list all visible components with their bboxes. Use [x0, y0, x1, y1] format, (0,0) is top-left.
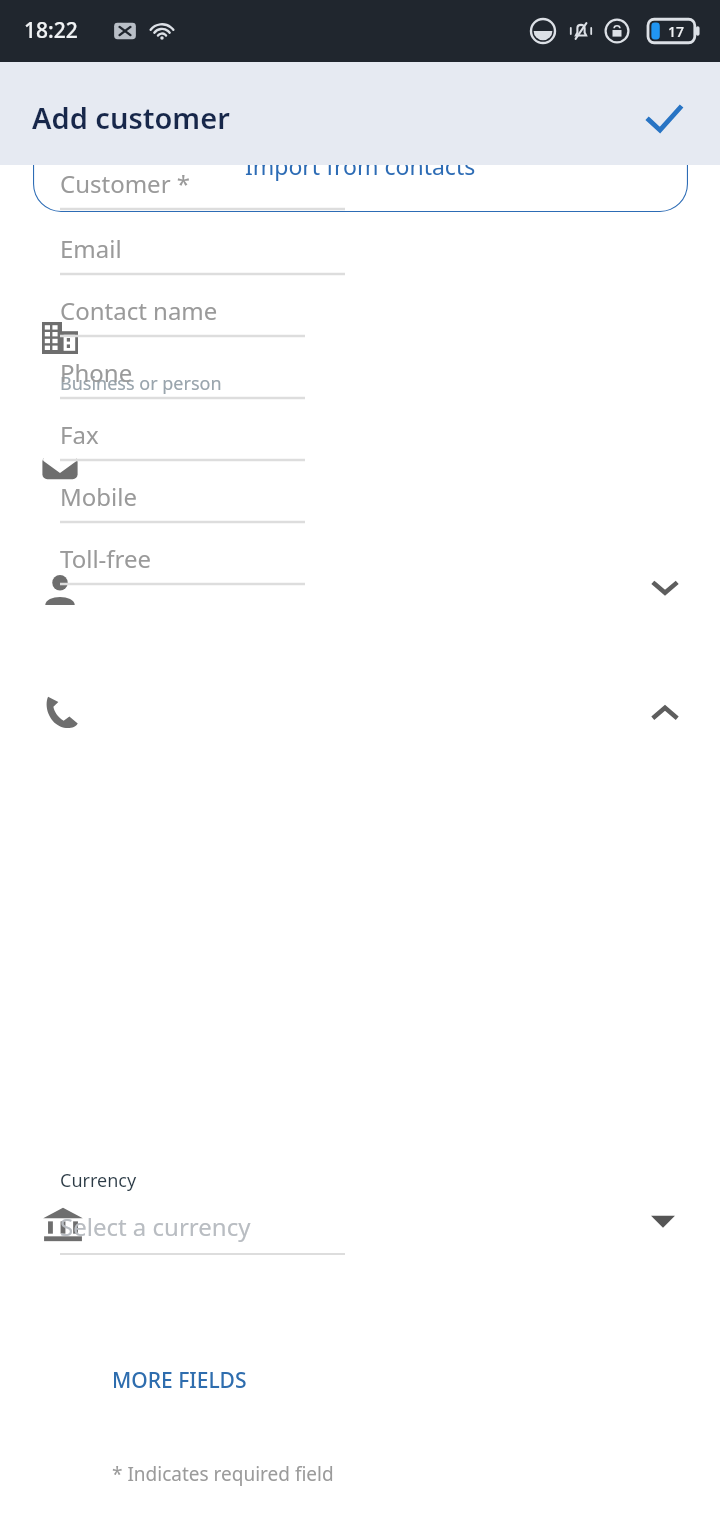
button[interactable]: Email: [60, 221, 345, 275]
staticText: Currency: [60, 1168, 137, 1193]
button[interactable]: Select a currency: [633, 1191, 693, 1251]
button[interactable]: Customer *: [60, 156, 345, 210]
staticText: Import from contacts: [245, 150, 476, 181]
button[interactable]: Import from contacts: [33, 120, 688, 212]
button[interactable]: Select a currency: [60, 1200, 345, 1252]
staticText: 17: [668, 22, 685, 41]
staticText: * Indicates required field: [112, 1461, 334, 1487]
staticText: Customer *: [60, 167, 191, 200]
staticText: Mobile: [60, 480, 137, 513]
button[interactable]: Fax: [60, 407, 305, 461]
staticText: Business or person: [60, 371, 222, 396]
staticText: Email: [60, 232, 122, 265]
button[interactable]: Contact name: [60, 283, 305, 337]
button[interactable]: Mobile: [60, 469, 305, 523]
button[interactable]: MORE FIELDS: [100, 1354, 259, 1406]
staticText: Phone: [60, 356, 133, 389]
staticText: 18:22: [24, 16, 78, 45]
staticText: Add customer: [32, 98, 230, 137]
staticText: Select a currency: [60, 1210, 251, 1243]
button[interactable]: Expand contact fields: [634, 557, 696, 619]
button[interactable]: Collapse phone fields: [634, 681, 696, 743]
staticText: Contact name: [60, 294, 218, 327]
button[interactable]: Toll-free: [60, 531, 305, 585]
staticText: Toll-free: [60, 542, 152, 575]
button[interactable]: Phone: [60, 345, 305, 399]
staticText: Fax: [60, 418, 99, 451]
staticText: MORE FIELDS: [112, 1366, 247, 1395]
button[interactable]: Save customer: [628, 83, 700, 155]
